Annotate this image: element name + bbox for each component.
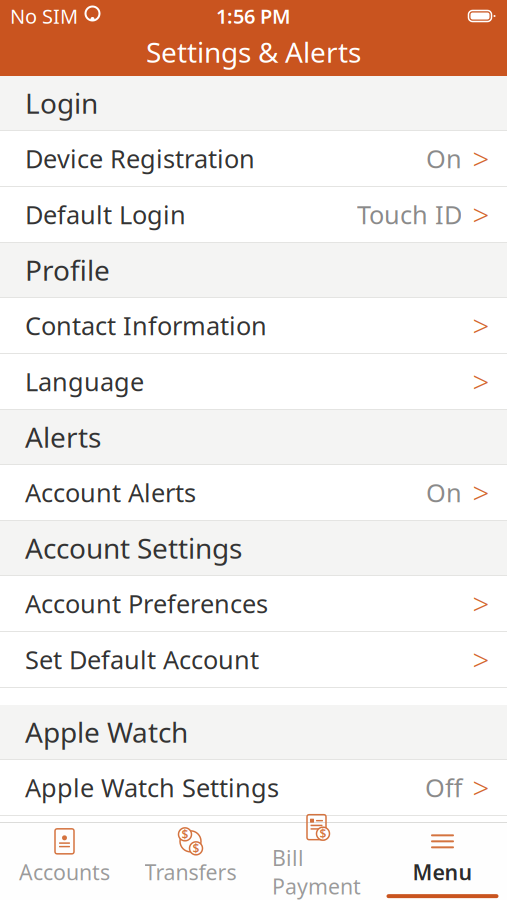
staticText: Account Preferences — [25, 587, 268, 620]
staticText: Transfers — [144, 858, 236, 886]
staticText: > — [472, 640, 489, 679]
button[interactable]: Default Login — [0, 187, 507, 242]
staticText: Set Default Account — [25, 643, 259, 676]
staticText: Account Alerts — [25, 476, 196, 509]
staticText: > — [472, 306, 489, 345]
button[interactable]: $ — [253, 823, 379, 900]
button[interactable]: Device Registration — [0, 131, 507, 186]
button[interactable]: Accounts — [1, 823, 127, 900]
button[interactable]: Menu — [379, 823, 505, 900]
button[interactable]: Language — [0, 354, 507, 409]
staticText: Apple Watch — [25, 713, 188, 751]
staticText: No SIM — [10, 3, 78, 29]
staticText: Account Settings — [25, 529, 242, 567]
staticText: Profile — [25, 251, 110, 289]
staticText: 1:56 PM — [216, 3, 291, 29]
button[interactable]: Contact Information — [0, 298, 507, 353]
button[interactable]: Apple Watch Settings — [0, 760, 507, 815]
staticText: Menu — [412, 858, 472, 886]
staticText: Default Login — [25, 198, 186, 231]
staticText: Touch ID — [357, 198, 462, 231]
staticText: > — [472, 473, 489, 512]
button[interactable]: Set Default Account — [0, 632, 507, 687]
staticText: Off — [425, 771, 462, 804]
staticText: Apple Watch Settings — [25, 771, 279, 804]
staticText: $ — [192, 840, 199, 856]
button[interactable]: Account Alerts — [0, 465, 507, 520]
staticText: Contact Information — [25, 309, 267, 342]
button[interactable]: Settings & Alerts — [0, 28, 507, 76]
staticText: > — [472, 584, 489, 623]
button[interactable]: $ — [127, 823, 253, 900]
staticText: Bill Payment — [272, 844, 361, 900]
staticText: > — [472, 195, 489, 234]
staticText: Accounts — [19, 858, 110, 886]
staticText: Language — [25, 365, 144, 398]
staticText: Device Registration — [25, 142, 255, 175]
staticText: > — [472, 362, 489, 401]
staticText: Settings & Alerts — [146, 33, 361, 71]
staticText: Login — [25, 84, 98, 122]
staticText: $ — [181, 826, 188, 842]
button[interactable]: Account Preferences — [0, 576, 507, 631]
staticText: On — [426, 476, 462, 509]
staticText: On — [426, 142, 462, 175]
staticText: > — [472, 139, 489, 178]
staticText: $ — [319, 826, 326, 842]
staticText: Alerts — [25, 418, 101, 456]
staticText: > — [472, 768, 489, 807]
